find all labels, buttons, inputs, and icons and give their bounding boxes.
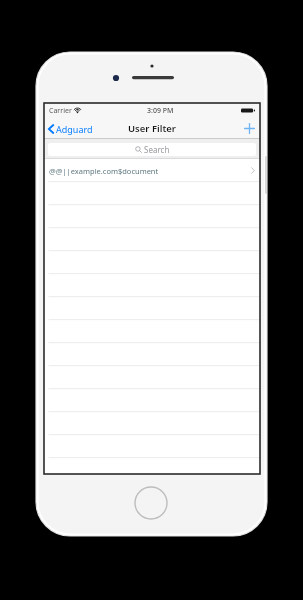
button[interactable]: Add rule [239, 120, 260, 137]
button[interactable] [44, 389, 260, 412]
button[interactable] [44, 435, 260, 458]
button[interactable]: @@||example.com$document [44, 159, 260, 182]
button[interactable] [44, 297, 260, 320]
button[interactable] [44, 412, 260, 435]
button[interactable] [44, 228, 260, 251]
staticText: Search [144, 144, 170, 155]
staticText: User Filter [128, 122, 176, 135]
button[interactable] [44, 366, 260, 389]
button[interactable]: Search [48, 143, 256, 156]
staticText: Adguard [56, 123, 93, 135]
staticText: @@||example.com$document [49, 166, 159, 176]
staticText: Carrier [49, 106, 72, 116]
button[interactable] [44, 320, 260, 343]
button[interactable] [44, 251, 260, 274]
button[interactable]: Adguard [44, 121, 99, 137]
button[interactable] [44, 182, 260, 205]
staticText: 3:09 PM [147, 106, 174, 116]
button[interactable] [44, 274, 260, 297]
button[interactable] [44, 343, 260, 366]
button[interactable] [44, 205, 260, 228]
